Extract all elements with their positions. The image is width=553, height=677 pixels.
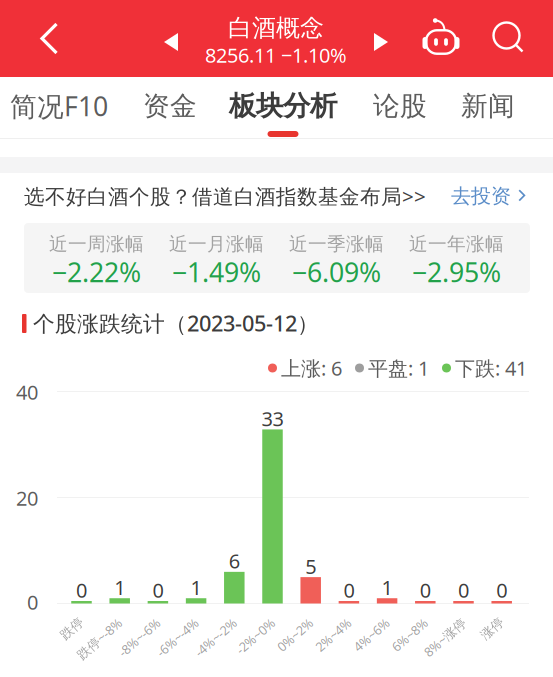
staticText: 0 [496,576,507,604]
staticText: 20 [16,484,38,512]
button[interactable]: Back [20,0,78,77]
button[interactable]: 新闻 [443,77,533,138]
staticText: 去投资 [451,183,511,209]
button[interactable]: 板块分析 [223,77,343,138]
staticText: -2%~0% [220,614,267,631]
staticText: 新闻 [461,89,515,123]
staticText: 6%~8% [377,614,420,631]
button[interactable]: Search [483,6,535,70]
staticText: 6 [229,547,240,574]
staticText: 5 [305,552,316,580]
staticText: -8%~-6% [102,614,153,631]
staticText: 简况F10 [10,88,108,124]
staticText: −1.49% [172,254,261,290]
staticText: 0 [152,576,163,604]
staticText: 近一周涨幅 [49,232,144,256]
staticText: 资金 [143,89,197,123]
staticText: 板块分析 [229,89,337,123]
staticText: −2.95% [412,254,501,290]
staticText: −6.09% [292,254,381,290]
staticText: 跌停~-8% [60,614,115,631]
staticText: 近一月涨幅 [169,232,264,256]
staticText: 2%~4% [301,614,344,631]
staticText: 平盘: 1 [368,354,429,382]
staticText: 0 [27,588,38,616]
button[interactable]: 简况F10 [4,77,114,138]
staticText: 下跌: 41 [455,354,527,382]
staticText: 1 [382,574,393,601]
button[interactable]: 论股 [355,77,445,138]
staticText: 近一年涨幅 [409,232,504,256]
staticText: 40 [16,378,38,406]
staticText: 0 [343,576,354,604]
staticText: 选不好白酒个股？借道白酒指数基金布局>> [24,182,426,210]
staticText: 8%~涨停 [407,614,458,631]
staticText: 0%~2% [263,614,306,631]
staticText: 跌停 [50,614,76,630]
staticText: -6%~-4% [140,614,191,631]
staticText: -4%~-2% [178,614,229,631]
staticText: 涨停 [471,614,497,630]
staticText: 1 [114,574,125,601]
staticText: −2.22% [52,254,141,290]
staticText: 1 [191,574,202,601]
staticText: 论股 [373,89,427,123]
button[interactable]: Previous sector [148,17,194,67]
staticText: 上涨: 6 [281,354,342,382]
button[interactable]: AI assistant [413,10,469,74]
staticText: 0 [420,576,431,604]
staticText: 8256.11 −1.10% [205,41,347,69]
staticText: 0 [76,576,87,604]
button[interactable]: 资金 [125,77,215,138]
staticText: 近一季涨幅 [289,232,384,256]
staticText: 0 [458,576,469,604]
staticText: 4%~6% [339,614,382,631]
staticText: 白酒概念 [228,13,324,43]
staticText: 33 [261,405,283,432]
staticText: 个股涨跌统计（2023-05-12） [33,308,319,338]
button[interactable]: 选不好白酒个股？借道白酒指数基金布局>> [0,173,553,219]
button[interactable]: Next sector [358,17,404,67]
